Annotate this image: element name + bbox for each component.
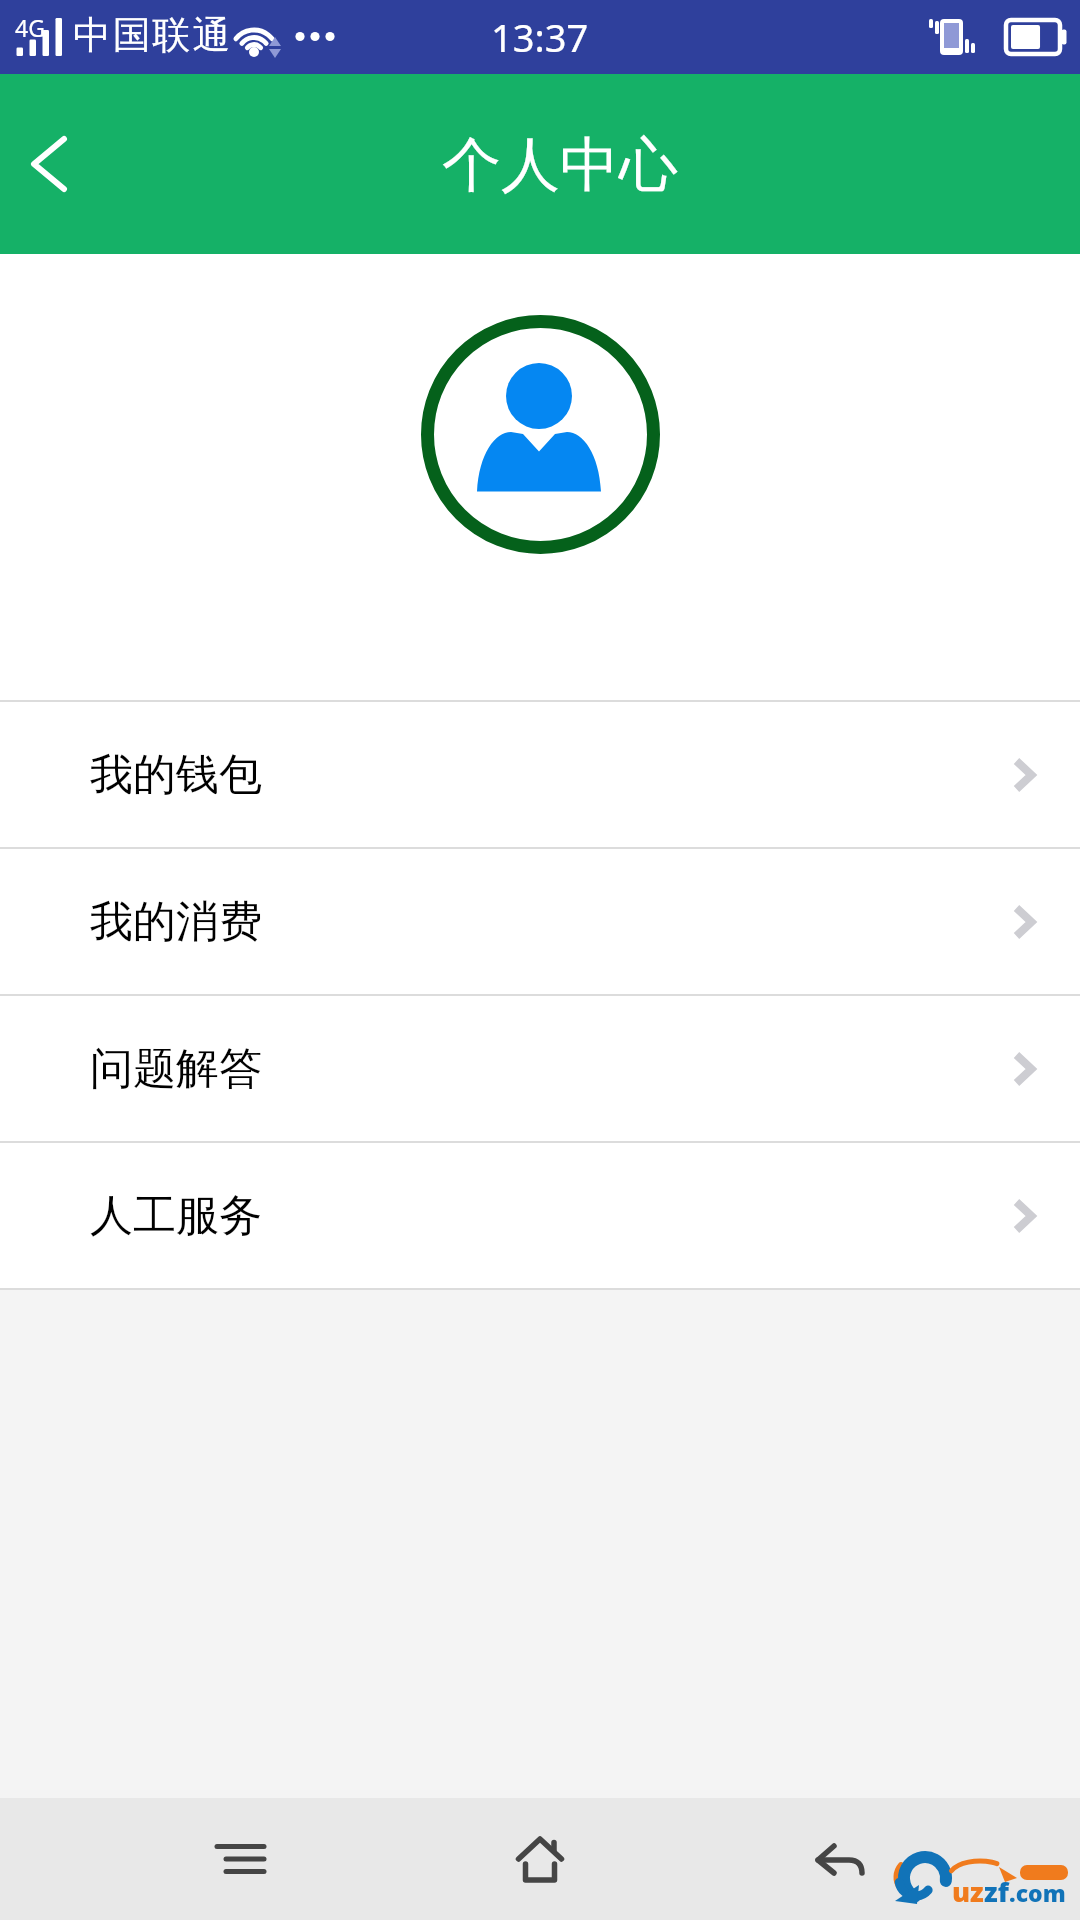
button[interactable]: Back xyxy=(0,99,96,229)
button[interactable]: 我的钱包 xyxy=(0,700,1080,847)
staticText: 个人中心 xyxy=(442,128,678,202)
staticText: 人工服务 xyxy=(90,1189,262,1243)
staticText: uz xyxy=(952,1873,984,1910)
staticText: 我的钱包 xyxy=(90,748,262,802)
button[interactable]: 人工服务 xyxy=(0,1141,1080,1288)
button[interactable]: Menu xyxy=(180,1798,300,1920)
button[interactable]: Home xyxy=(480,1798,600,1920)
staticText: 中国联通 xyxy=(73,11,233,59)
staticText: 13:37 xyxy=(491,11,589,63)
staticText: 问题解答 xyxy=(90,1042,262,1096)
button[interactable]: 我的消费 xyxy=(0,847,1080,994)
staticText: .com xyxy=(1009,1877,1066,1908)
staticText: 我的消费 xyxy=(90,895,262,949)
staticText: zf xyxy=(984,1873,1009,1910)
button[interactable]: 问题解答 xyxy=(0,994,1080,1141)
staticText: 4G xyxy=(15,12,45,43)
button[interactable]: Back xyxy=(780,1798,900,1920)
